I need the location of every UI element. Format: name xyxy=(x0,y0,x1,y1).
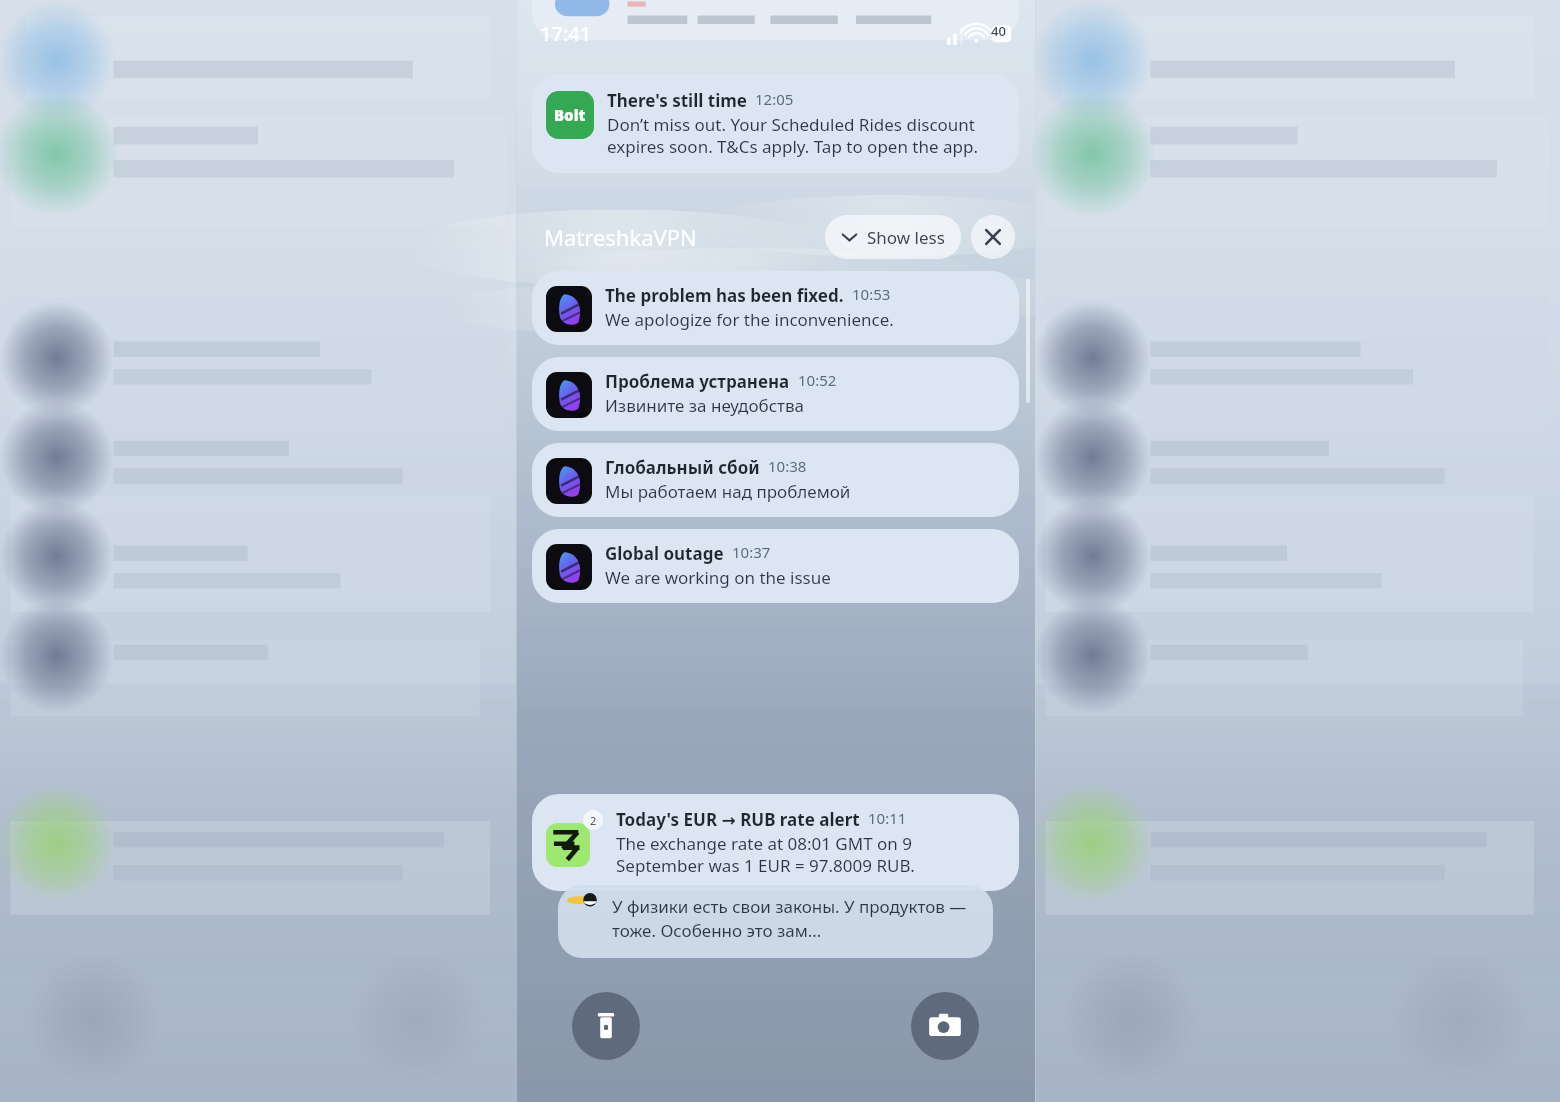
staticText: 10:53 xyxy=(852,284,891,304)
staticText: 17:41 xyxy=(540,20,592,47)
staticText: Global outage xyxy=(605,542,724,565)
button[interactable]: Flashlight xyxy=(572,992,640,1060)
staticText: 10:38 xyxy=(768,456,807,476)
staticText: 10:52 xyxy=(798,370,837,390)
staticText: Мы работаем над проблемой xyxy=(605,480,851,503)
button[interactable]: Show less xyxy=(825,215,961,259)
staticText: Bolt xyxy=(554,105,586,125)
button[interactable]: Проблема устранена xyxy=(532,357,1019,431)
staticText: 10:11 xyxy=(868,808,907,828)
staticText: 40 xyxy=(991,22,1006,40)
staticText: We apologize for the inconvenience. xyxy=(605,308,894,331)
staticText: Today's EUR → RUB rate alert xyxy=(616,808,860,831)
staticText: The problem has been fixed. xyxy=(605,284,844,307)
staticText: Проблема устранена xyxy=(605,370,790,393)
staticText: У физики есть свои законы. У продуктов —… xyxy=(612,895,979,942)
staticText: There's still time xyxy=(607,89,747,112)
staticText: Извините за неудобства xyxy=(605,394,804,417)
staticText: 2 xyxy=(590,813,597,828)
staticText: We are working on the issue xyxy=(605,566,831,589)
staticText: Don’t miss out. Your Scheduled Rides dis… xyxy=(607,113,1003,158)
button[interactable]: Camera xyxy=(911,992,979,1060)
staticText: MatreshkaVPN xyxy=(544,222,697,252)
staticText: The exchange rate at 08:01 GMT on 9 Sept… xyxy=(616,832,1003,877)
button[interactable]: Глобальный сбой xyxy=(532,443,1019,517)
button[interactable]: У физики есть свои законы. У продуктов —… xyxy=(558,885,993,958)
staticText: Show less xyxy=(867,226,945,249)
button[interactable]: Global outage xyxy=(532,529,1019,603)
button[interactable]: The problem has been fixed. xyxy=(532,271,1019,345)
staticText: 12:05 xyxy=(755,89,794,109)
button[interactable]: Dismiss MatreshkaVPN notifications xyxy=(971,215,1015,259)
button[interactable]: 2 xyxy=(532,794,1019,891)
staticText: 10:37 xyxy=(732,542,771,562)
button[interactable]: Bolt xyxy=(532,74,1019,173)
staticText: Глобальный сбой xyxy=(605,456,760,479)
